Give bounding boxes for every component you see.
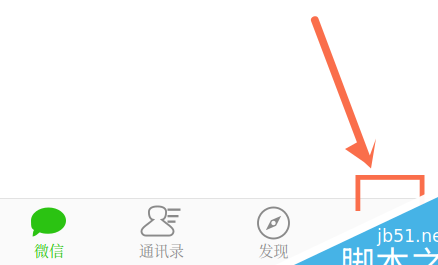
staticText: 微信 [34,239,64,261]
staticText: 脚本之家 [340,236,438,265]
button[interactable]: 微信 [0,198,105,265]
staticText: 发现 [258,239,288,261]
button[interactable]: 通讯录 [105,198,217,265]
staticText: jb51.net [377,226,438,246]
button[interactable]: 发现 [217,198,329,265]
staticText: 通讯录 [139,239,184,261]
